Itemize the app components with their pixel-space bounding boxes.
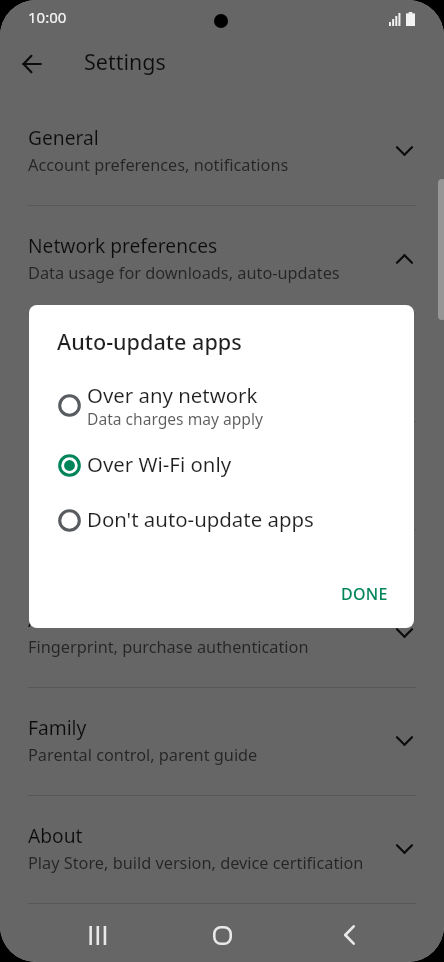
button[interactable]: About [0, 795, 444, 903]
button[interactable]: Notifications [0, 421, 444, 529]
button[interactable]: Home [191, 908, 253, 962]
staticText: Play Store, build version, device certif… [28, 852, 364, 874]
staticText: General [28, 124, 99, 150]
staticText: Data usage for downloads, auto-updates [28, 262, 340, 284]
staticText: Over any network [87, 381, 258, 409]
staticText: Notifications [28, 448, 143, 474]
staticText: Download preferences, app download size [28, 370, 352, 392]
staticText: Authentication [28, 606, 161, 632]
staticText: Parental control, parent guide [28, 744, 258, 766]
staticText: DONE [341, 583, 388, 605]
button[interactable]: Network preferences [0, 205, 444, 313]
staticText: Settings [84, 47, 166, 76]
staticText: Updates, offers, pre-registration [28, 478, 274, 500]
button[interactable]: Back [12, 44, 52, 84]
staticText: Fingerprint, purchase authentication [28, 636, 309, 658]
staticText: Network preferences [28, 232, 218, 258]
staticText: Over Wi-Fi only [87, 450, 232, 478]
staticText: Data charges may apply [87, 408, 263, 429]
staticText: Downloads [28, 340, 129, 366]
staticText: Account preferences, notifications [28, 154, 289, 176]
staticText: Auto-update apps [57, 327, 242, 356]
button[interactable]: Over any network [29, 378, 414, 436]
button[interactable]: Recent apps [65, 908, 127, 962]
staticText: About [28, 822, 83, 848]
button[interactable]: Back [318, 908, 380, 962]
button[interactable]: Downloads [0, 313, 444, 421]
staticText: Family [28, 714, 87, 740]
button[interactable]: Authentication [0, 579, 444, 687]
staticText: 10:00 [28, 7, 67, 27]
button[interactable]: General [0, 97, 444, 205]
button[interactable]: DONE [328, 575, 400, 613]
button[interactable]: Family [0, 687, 444, 795]
staticText: Don't auto-update apps [87, 505, 314, 533]
button[interactable]: Over Wi-Fi only [29, 443, 414, 493]
button[interactable]: Don't auto-update apps [29, 498, 414, 548]
